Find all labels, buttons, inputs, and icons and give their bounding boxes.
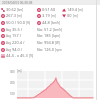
staticText: 300 <box>10 70 15 74</box>
staticText: [m] <box>17 14 22 18</box>
staticText: 0:51:50 <box>42 7 56 12</box>
staticText: Avg <box>6 48 11 52</box>
button[interactable]: stat icon <box>0 32 37 39</box>
staticText: 220.4 / <box>12 40 25 45</box>
button[interactable]: Max <box>36 46 62 53</box>
button[interactable]: stat icon <box>0 52 37 59</box>
staticText: 30.62 <box>6 7 16 12</box>
other: stat icon <box>1 28 5 32</box>
button[interactable]: stat icon <box>0 46 37 53</box>
staticText: 35.5 / <box>12 27 23 32</box>
staticText: 44.8 <box>42 20 50 25</box>
other: stat icon <box>62 14 66 18</box>
other: stat icon <box>1 34 5 38</box>
other: stat icon <box>62 8 66 12</box>
staticText: [%] <box>26 21 31 25</box>
staticText: [%] <box>29 54 34 58</box>
button[interactable]: stat icon <box>36 6 62 13</box>
staticText: Max <box>37 41 43 45</box>
other: stat icon <box>1 54 5 58</box>
staticText: [m] <box>17 69 22 73</box>
staticText: 200 <box>10 81 15 85</box>
staticText: 00 <box>67 13 72 18</box>
staticText: [m] <box>51 14 56 18</box>
button[interactable]: Max <box>36 32 62 39</box>
staticText: 50.0 / 50.0 <box>6 20 25 25</box>
staticText: 149.4 <box>67 7 77 12</box>
other: stat icon <box>37 14 41 18</box>
staticText: 100 <box>10 92 15 96</box>
staticText: Max <box>37 48 43 52</box>
staticText: [m] <box>73 14 78 18</box>
staticText: Avg <box>6 28 11 32</box>
button[interactable]: stat icon <box>0 12 37 19</box>
other: stat icon <box>1 48 5 52</box>
staticText: [km/h] <box>51 21 61 25</box>
staticText: 3.19 <box>42 13 50 18</box>
staticText: 994.8 <box>44 40 54 45</box>
staticText: [km/h] <box>53 28 62 32</box>
button[interactable]: Max <box>36 39 62 46</box>
staticText: 2018/04/03 06:30:38 <box>2 1 33 5</box>
other: stat icon <box>1 14 5 18</box>
other: stat icon <box>37 21 41 25</box>
staticText: 126.0 <box>44 47 54 52</box>
staticText: [km] <box>17 8 24 12</box>
staticText: [bpm] <box>52 34 61 38</box>
staticText: 185 <box>44 33 51 38</box>
staticText: Max <box>37 28 43 32</box>
button[interactable]: stat icon <box>36 12 62 19</box>
staticText: 94.0 / <box>12 47 23 52</box>
button[interactable]: Max <box>36 26 62 33</box>
staticText: [rpm] <box>55 48 62 52</box>
button[interactable]: stat icon <box>0 19 37 26</box>
button[interactable]: stat icon <box>61 6 99 13</box>
staticText: 51.2 <box>44 27 52 32</box>
button[interactable]: stat icon <box>0 26 37 33</box>
staticText: [W] <box>55 41 60 45</box>
other: stat icon <box>1 21 5 25</box>
staticText: 44.4 - x 45.3 <box>6 53 28 58</box>
staticText: [m] <box>78 8 83 12</box>
button[interactable]: stat icon <box>61 12 99 19</box>
staticText: Avg <box>6 41 11 45</box>
button[interactable]: stat icon <box>0 39 37 46</box>
button[interactable]: stat icon <box>36 19 62 26</box>
other: stat icon <box>1 41 5 45</box>
button[interactable]: 2018/04/03 06:30:38 <box>0 0 100 5</box>
other: stat icon <box>37 8 41 12</box>
other: stat icon <box>1 8 5 12</box>
staticText: 267.3 <box>6 13 16 18</box>
staticText: Max <box>37 34 43 38</box>
button[interactable]: stat icon <box>0 6 37 13</box>
staticText: 157 / <box>12 33 22 38</box>
staticText: Avg <box>6 34 11 38</box>
